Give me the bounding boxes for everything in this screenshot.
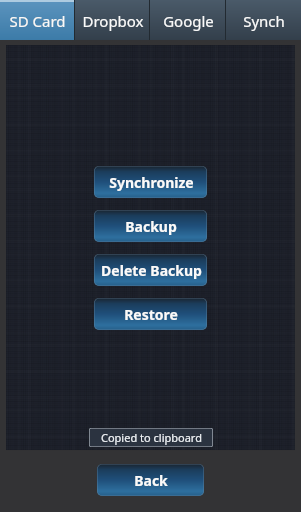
staticText: Synchronize	[109, 173, 194, 192]
button[interactable]: Synchronize	[94, 166, 207, 198]
staticText: Google	[163, 11, 214, 31]
button[interactable]: Dropbox	[75, 0, 149, 40]
staticText: SD Card	[9, 11, 66, 31]
button[interactable]: Backup	[94, 210, 207, 242]
button[interactable]: Delete Backup	[94, 254, 207, 286]
button[interactable]: Restore	[94, 298, 207, 330]
staticText: Back	[134, 471, 168, 490]
staticText: Copied to clipboard	[101, 430, 202, 445]
staticText: Dropbox	[82, 11, 144, 31]
staticText: Restore	[124, 305, 178, 324]
button[interactable]: Google	[150, 0, 225, 40]
staticText: Google	[163, 11, 214, 31]
staticText: Synch	[243, 11, 285, 31]
button[interactable]: Back	[97, 464, 204, 496]
staticText: Dropbox	[82, 11, 144, 31]
staticText: SD Card	[9, 11, 66, 31]
staticText: Synch	[243, 11, 285, 31]
staticText: Backup	[125, 217, 177, 236]
staticText: Synchronize	[109, 173, 194, 192]
staticText: Backup	[125, 217, 177, 236]
button[interactable]: Synch	[226, 0, 301, 40]
staticText: Restore	[124, 305, 178, 324]
staticText: Delete Backup	[101, 261, 202, 280]
staticText: Back	[134, 471, 168, 490]
button[interactable]: SD Card	[0, 0, 74, 40]
staticText: Delete Backup	[101, 261, 202, 280]
